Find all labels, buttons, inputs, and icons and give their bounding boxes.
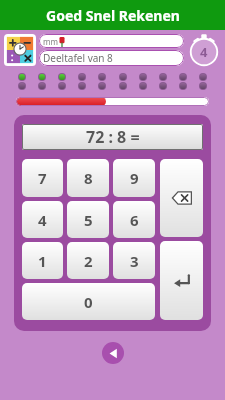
button[interactable]: Backspace [160, 159, 203, 237]
staticText: 4 [38, 210, 47, 230]
button[interactable]: 1 [22, 242, 63, 279]
button[interactable]: mm [39, 34, 184, 48]
button[interactable]: 8 [67, 159, 109, 197]
button[interactable]: 3 [113, 242, 155, 279]
button[interactable]: 0 [22, 283, 155, 320]
staticText: 6 [130, 210, 139, 230]
button[interactable]: 6 [113, 201, 155, 238]
button[interactable]: Enter [160, 241, 203, 320]
staticText: 3 [130, 251, 139, 271]
staticText: 7 [38, 168, 47, 188]
button[interactable]: 9 [113, 159, 155, 197]
staticText: 1 [38, 251, 47, 271]
button[interactable]: Timer [187, 33, 221, 67]
button[interactable]: 4 [22, 201, 63, 238]
staticText: 0 [84, 292, 93, 312]
staticText: mm [43, 36, 58, 47]
staticText: 72 : 8 = [86, 126, 140, 148]
staticText: 5 [84, 210, 93, 230]
staticText: 9 [130, 168, 139, 188]
staticText: 2 [84, 251, 93, 271]
staticText: 4 [200, 43, 208, 61]
button[interactable]: App icon [4, 34, 36, 66]
button[interactable]: 2 [67, 242, 109, 279]
staticText: Goed Snel Rekenen [46, 6, 180, 25]
button[interactable]: Back [102, 342, 124, 364]
staticText: Deeltafel van 8 [43, 51, 113, 65]
staticText: 8 [84, 168, 93, 188]
button[interactable]: 5 [67, 201, 109, 238]
button[interactable]: Deeltafel van 8 [39, 50, 184, 66]
button[interactable]: 7 [22, 159, 63, 197]
